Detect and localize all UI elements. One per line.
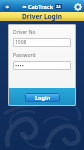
staticText: Driver No [13,29,36,36]
button[interactable]: Back [2,2,11,11]
staticText: 1008 [15,39,27,46]
button[interactable]: •••• [13,61,71,70]
staticText: CabTrack [28,3,54,10]
staticText: 24 [56,4,61,9]
staticText: •••• [15,62,25,70]
staticText: Login [35,94,51,101]
staticText: Driver Login [22,12,62,21]
staticText: Password [13,52,36,59]
button[interactable]: Login [25,93,60,102]
button[interactable]: 1008 [13,38,71,47]
button[interactable]: Settings [73,2,82,11]
